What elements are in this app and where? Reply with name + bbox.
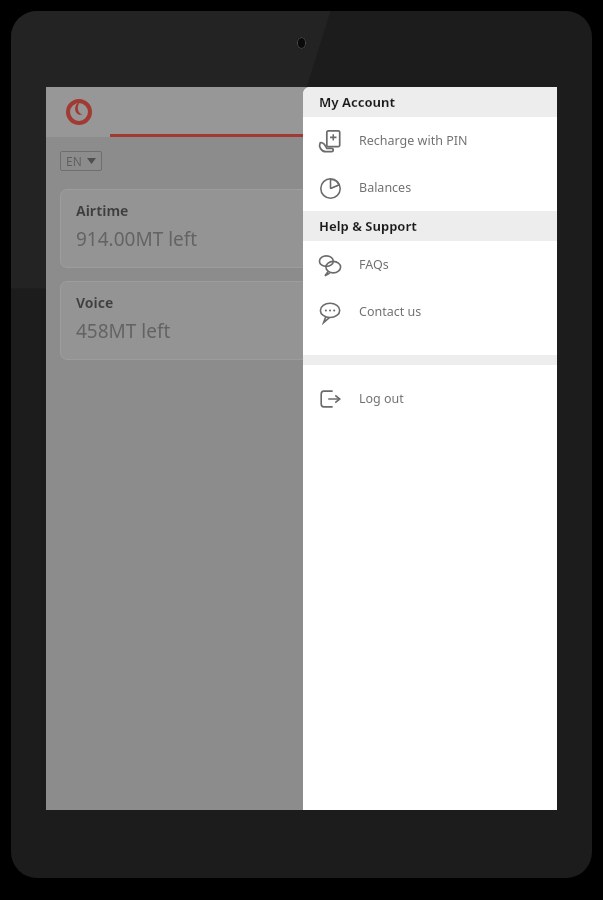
staticText: EN bbox=[66, 153, 82, 169]
staticText: Contact us bbox=[359, 303, 422, 320]
button[interactable]: Vodafone home bbox=[62, 95, 96, 129]
button[interactable]: Contact us bbox=[303, 288, 557, 335]
button[interactable]: EN bbox=[60, 151, 102, 171]
button[interactable]: Home bbox=[110, 87, 557, 137]
staticText: FAQs bbox=[359, 256, 389, 273]
staticText: Help & Support bbox=[319, 217, 417, 235]
staticText: My Account bbox=[319, 93, 396, 111]
button[interactable]: Voice bbox=[60, 281, 543, 360]
staticText: 914.00MT left bbox=[76, 226, 198, 252]
staticText: Recharge with PIN bbox=[359, 132, 468, 149]
staticText: Home bbox=[315, 103, 352, 121]
staticText: Voice bbox=[76, 293, 114, 312]
button[interactable]: Log out bbox=[303, 375, 557, 422]
button[interactable]: Balances bbox=[303, 164, 557, 211]
staticText: Log out bbox=[359, 390, 404, 407]
staticText: Airtime bbox=[76, 201, 129, 220]
button[interactable]: Airtime bbox=[60, 189, 543, 268]
button[interactable]: Recharge with PIN bbox=[303, 117, 557, 164]
button[interactable]: FAQs bbox=[303, 241, 557, 288]
staticText: 458MT left bbox=[76, 318, 171, 344]
staticText: Balances bbox=[359, 179, 412, 196]
